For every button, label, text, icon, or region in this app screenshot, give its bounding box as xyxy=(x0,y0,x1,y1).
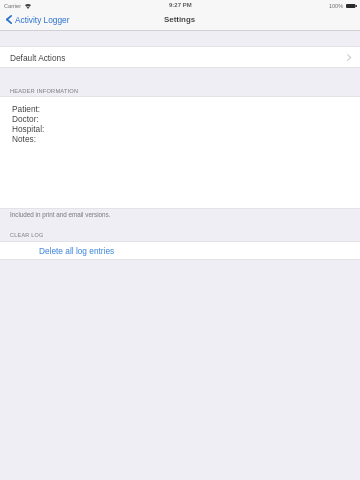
staticText: 9:27 PM xyxy=(169,2,192,9)
button[interactable]: Activity Logger xyxy=(0,13,76,26)
button[interactable]: Patient: xyxy=(0,96,360,209)
staticText: Doctor: xyxy=(12,114,39,124)
staticText: 100% xyxy=(329,3,344,9)
staticText: Delete all log entries xyxy=(39,246,115,255)
button[interactable]: Delete all log entries xyxy=(0,241,360,260)
staticText: Patient: xyxy=(12,104,41,114)
staticText: CLEAR LOG xyxy=(10,232,44,238)
staticText: HEADER INFORMATION xyxy=(10,88,79,94)
staticText: Hospital: xyxy=(12,124,45,134)
staticText: Notes: xyxy=(12,134,36,144)
staticText: Carrier xyxy=(4,3,22,9)
staticText: Settings xyxy=(164,15,196,24)
staticText: Default Actions xyxy=(10,53,66,62)
other: Wi-Fi signal xyxy=(25,4,31,9)
staticText: Included in print and email versions. xyxy=(10,211,111,218)
staticText: Activity Logger xyxy=(15,15,70,24)
button[interactable]: Default Actions xyxy=(0,46,360,68)
other: Battery full xyxy=(346,4,357,8)
